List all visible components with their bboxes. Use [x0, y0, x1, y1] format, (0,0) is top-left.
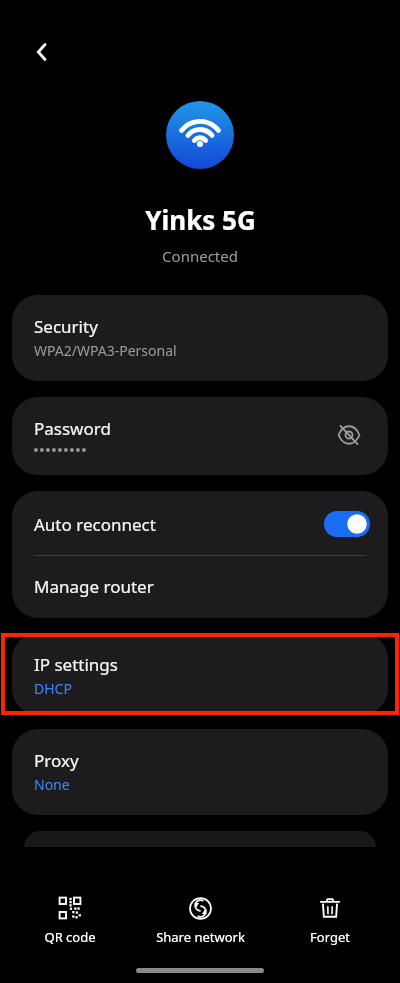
button[interactable]: IP settings [12, 633, 388, 715]
button[interactable]: Show password [332, 418, 366, 452]
button[interactable]: Auto reconnect toggle [324, 511, 370, 537]
staticText: QR code [44, 928, 96, 946]
staticText: Proxy [34, 749, 79, 772]
button[interactable]: Proxy [12, 729, 388, 815]
button[interactable]: Back [22, 32, 62, 72]
button[interactable]: Security [12, 295, 388, 381]
button[interactable]: IP settings [12, 633, 388, 715]
button[interactable]: Password [12, 397, 388, 475]
staticText: Manage router [34, 575, 154, 598]
button[interactable]: Manage router [12, 556, 388, 618]
staticText: Auto reconnect [34, 513, 324, 536]
staticText: Password [34, 417, 111, 440]
staticText: Share network [156, 928, 245, 946]
button[interactable]: QR code [10, 889, 130, 952]
staticText: IP settings [34, 653, 118, 676]
button[interactable]: Share network [140, 889, 260, 952]
staticText: Security [34, 315, 98, 338]
staticText: Forget [310, 928, 350, 946]
staticText: Yinks 5G [145, 202, 256, 237]
staticText: WPA2/WPA3-Personal [34, 341, 177, 360]
staticText: None [34, 775, 70, 794]
button[interactable]: Forget [270, 889, 390, 952]
button[interactable]: Auto reconnect [12, 491, 388, 555]
staticText: Connected [162, 246, 238, 266]
staticText: DHCP [34, 679, 72, 694]
